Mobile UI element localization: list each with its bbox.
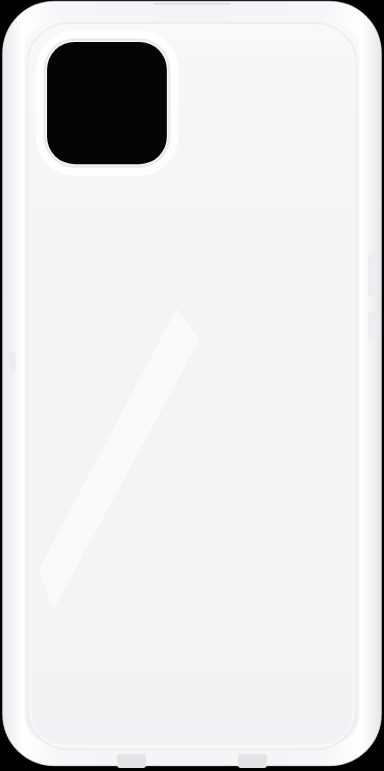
button[interactable]: Clear protective phone case, back view [0,0,384,771]
